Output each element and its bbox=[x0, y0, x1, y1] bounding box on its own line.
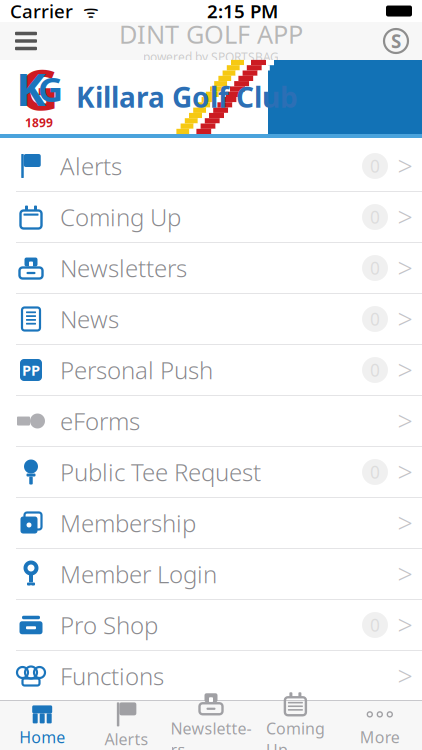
staticText: 0 bbox=[370, 256, 380, 279]
staticText: 1899 bbox=[25, 114, 53, 130]
staticText: > bbox=[397, 301, 412, 337]
staticText: S bbox=[391, 29, 401, 53]
staticText: > bbox=[397, 607, 412, 643]
button[interactable]: Pro Shop bbox=[0, 600, 422, 651]
staticText: Pro Shop bbox=[60, 609, 158, 641]
staticText: eForms bbox=[60, 405, 140, 437]
staticText: 2:15 PM bbox=[207, 0, 278, 23]
button[interactable]: Alerts bbox=[0, 141, 422, 192]
button[interactable]: Functions bbox=[0, 651, 422, 702]
staticText: K bbox=[16, 58, 46, 119]
button[interactable]: Menu bbox=[0, 22, 52, 60]
button[interactable]: Public Tee Request bbox=[0, 447, 422, 498]
staticText: 0 bbox=[370, 358, 380, 381]
staticText: Newsletters bbox=[60, 252, 187, 284]
staticText: Functions bbox=[60, 660, 164, 692]
staticText: More bbox=[360, 726, 400, 748]
staticText: 0 bbox=[370, 307, 380, 330]
staticText: Member Login bbox=[60, 558, 217, 590]
staticText: G bbox=[38, 65, 63, 111]
staticText: Home bbox=[19, 726, 65, 748]
staticText: Membership bbox=[60, 507, 196, 539]
staticText: ᯤ bbox=[73, 0, 99, 22]
staticText: > bbox=[397, 658, 412, 694]
staticText: > bbox=[397, 148, 412, 184]
staticText: > bbox=[397, 199, 412, 235]
staticText: Carrier bbox=[10, 0, 73, 23]
button[interactable]: Coming Up bbox=[253, 701, 338, 750]
staticText: Coming Up bbox=[60, 201, 181, 233]
staticText: News bbox=[60, 303, 119, 335]
button[interactable]: Coming Up bbox=[0, 192, 422, 243]
staticText: Coming Up bbox=[266, 718, 325, 750]
staticText: Personal Push bbox=[60, 354, 213, 386]
staticText: Public Tee Request bbox=[60, 456, 261, 488]
staticText: 0 bbox=[370, 205, 380, 228]
button[interactable]: Newsletters bbox=[0, 243, 422, 294]
staticText: 0 bbox=[370, 154, 380, 177]
button[interactable]: Membership bbox=[0, 498, 422, 549]
button[interactable]: Home bbox=[0, 701, 84, 750]
staticText: Alerts bbox=[105, 728, 149, 750]
staticText: Killara Golf Club bbox=[76, 78, 298, 116]
button[interactable]: More bbox=[338, 701, 422, 750]
staticText: > bbox=[397, 403, 412, 439]
staticText: 0 bbox=[370, 460, 380, 483]
button[interactable]: PP bbox=[0, 345, 422, 396]
staticText: 0 bbox=[370, 613, 380, 636]
button[interactable]: eForms bbox=[0, 396, 422, 447]
button[interactable]: Refresh bbox=[370, 22, 422, 60]
staticText: powered by SPORTSBAG bbox=[143, 49, 279, 65]
button[interactable]: Member Login bbox=[0, 549, 422, 600]
staticText: > bbox=[397, 454, 412, 490]
staticText: PP bbox=[22, 360, 40, 380]
button[interactable]: News bbox=[0, 294, 422, 345]
staticText: Alerts bbox=[60, 150, 122, 182]
button[interactable]: Alerts bbox=[84, 701, 169, 750]
staticText: > bbox=[397, 352, 412, 388]
button[interactable]: Newsletters bbox=[169, 701, 253, 750]
staticText: DINT GOLF APP bbox=[119, 17, 303, 51]
staticText: > bbox=[397, 556, 412, 592]
staticText: > bbox=[397, 250, 412, 286]
staticText: > bbox=[397, 505, 412, 541]
staticText: Newsletters bbox=[170, 718, 251, 750]
staticText: G bbox=[18, 51, 59, 126]
